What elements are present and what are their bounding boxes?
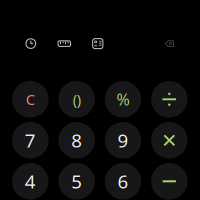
staticText: () bbox=[73, 90, 81, 109]
button[interactable]: () bbox=[53, 79, 100, 120]
button[interactable]: 4 bbox=[7, 161, 53, 200]
button[interactable]: Split the bill bbox=[85, 32, 111, 56]
button[interactable]: Recents bbox=[18, 32, 44, 56]
staticText: 5 bbox=[71, 169, 82, 194]
button[interactable]: 7 bbox=[7, 120, 53, 161]
button[interactable]: Multiply bbox=[146, 120, 192, 161]
staticText: 6 bbox=[117, 169, 128, 194]
staticText: C bbox=[26, 90, 35, 109]
staticText: 8 bbox=[71, 128, 82, 153]
button[interactable]: 9 bbox=[100, 120, 146, 161]
button[interactable]: % bbox=[100, 79, 146, 120]
button[interactable]: 5 bbox=[53, 161, 100, 200]
staticText: % bbox=[116, 89, 129, 110]
button[interactable]: Delete bbox=[156, 32, 182, 56]
button[interactable]: 6 bbox=[100, 161, 146, 200]
button[interactable]: 8 bbox=[53, 120, 100, 161]
staticText: 9 bbox=[117, 128, 128, 153]
button[interactable]: C bbox=[7, 79, 53, 120]
button[interactable]: Divide bbox=[146, 79, 192, 120]
button[interactable]: Unit converter bbox=[51, 32, 77, 56]
staticText: 4 bbox=[25, 169, 36, 194]
staticText: 7 bbox=[25, 128, 36, 153]
button[interactable]: Subtract bbox=[146, 161, 192, 200]
